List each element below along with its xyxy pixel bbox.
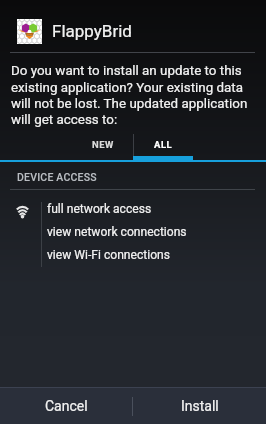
staticText: DEVICE ACCESS (17, 171, 97, 183)
staticText: ALL (154, 139, 173, 150)
staticText: NEW (92, 139, 114, 150)
button[interactable]: Install (133, 388, 266, 424)
button[interactable]: ALL (133, 131, 193, 160)
staticText: view network connections (47, 225, 187, 239)
staticText: Cancel (45, 398, 88, 414)
staticText: Do you want to install an update to this… (11, 63, 255, 127)
staticText: FlappyBrid (52, 21, 132, 41)
button[interactable]: NEW (73, 131, 133, 160)
staticText: view Wi-Fi connections (47, 248, 170, 262)
button[interactable]: Cancel (0, 388, 132, 424)
staticText: Install (181, 398, 219, 414)
other: Network access (14, 203, 31, 218)
staticText: full network access (47, 202, 152, 216)
